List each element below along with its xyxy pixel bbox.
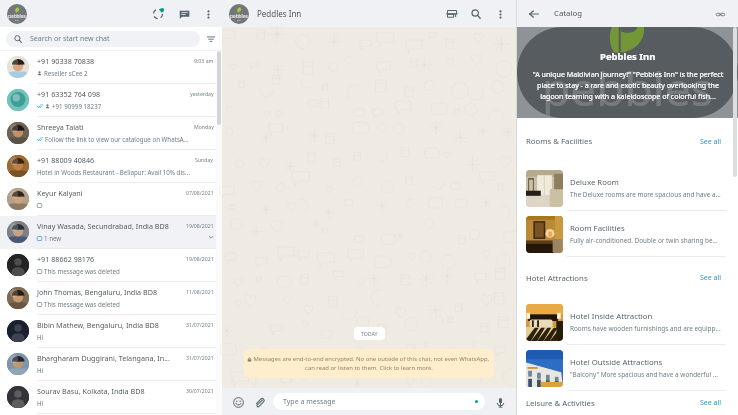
staticText: Hi — [37, 333, 44, 341]
button[interactable]: New chat — [175, 5, 193, 23]
button[interactable]: Status — [149, 5, 167, 23]
staticText: Search or start new chat — [30, 34, 110, 44]
button[interactable]: See all — [698, 270, 724, 286]
button[interactable]: See all — [698, 134, 724, 150]
staticText: Hotel Attractions — [526, 273, 588, 284]
button[interactable]: Hotel Inside Attraction — [517, 299, 738, 345]
staticText: "A unique Maldivian journey!" "Pebbles I… — [525, 69, 731, 101]
button[interactable]: Keyur Kalyani — [0, 183, 222, 216]
staticText: Deluxe Room — [570, 177, 619, 188]
staticText: See all — [700, 398, 722, 408]
button[interactable]: Voice message — [492, 394, 508, 410]
button[interactable]: +91 88009 40846 — [0, 150, 222, 183]
button[interactable]: John Thomas, Bengaluru, India BD8 — [0, 282, 222, 315]
staticText: +91 90338 70838 — [37, 56, 95, 66]
staticText: inn — [237, 18, 241, 21]
staticText: 31/07/2021 — [186, 321, 214, 328]
button[interactable]: +91 63352 764 098 — [0, 84, 222, 117]
button[interactable]: Search — [467, 5, 485, 23]
staticText: This message was deleted — [44, 267, 120, 275]
staticText: Catalog — [554, 8, 583, 19]
staticText: Monday — [194, 123, 214, 130]
staticText: Peddles Inn — [257, 8, 302, 19]
button[interactable]: Bhargharam Duggirani, Telangana, In... — [0, 348, 222, 381]
staticText: 30/07/2021 — [186, 387, 214, 394]
button[interactable]: Hotel Outside Attractions — [517, 345, 738, 391]
staticText: 11/08/2021 — [186, 288, 214, 295]
staticText: +91 90999 18237 — [52, 102, 102, 110]
staticText: Hotel in Woods Restaurant - Bellapur: Av… — [37, 168, 191, 176]
button[interactable]: Filter chats — [204, 32, 218, 46]
staticText: Sourav Basu, Kolkata, India BD8 — [37, 386, 145, 396]
button[interactable]: +91 90338 70838 — [0, 51, 222, 84]
staticText: Type a message — [283, 397, 336, 407]
button[interactable]: +91 88662 98176 — [0, 249, 222, 282]
staticText: This message was deleted — [44, 300, 120, 308]
staticText: Keyur Kalyani — [37, 188, 83, 198]
button[interactable]: pebbles — [229, 0, 508, 27]
staticText: See all — [700, 137, 722, 147]
staticText: Rooms & Facilities — [526, 136, 593, 147]
staticText: 31/07/2021 — [186, 354, 214, 361]
staticText: 9:03 am — [194, 57, 214, 64]
button[interactable]: Sourav Basu, Kolkata, India BD8 — [0, 381, 222, 414]
button[interactable]: Bibin Mathew, Bengaluru, India BD8 — [0, 315, 222, 348]
staticText: Leisure & Activities — [526, 398, 595, 409]
staticText: +91 88662 98176 — [37, 254, 95, 264]
button[interactable]: Catalog — [443, 5, 461, 23]
button[interactable]: Messages are end-to-end encrypted. No on… — [244, 349, 494, 378]
button[interactable]: Shreeya Talati — [0, 117, 222, 150]
staticText: Vinay Wasada, Secundrabad, India BD8 — [37, 221, 169, 231]
staticText: inn — [15, 18, 19, 21]
staticText: 19/08/2021 — [186, 255, 214, 262]
staticText: Reseller sCee 2 — [44, 69, 88, 77]
staticText: Rooms have wooden furnishings and are eq… — [570, 324, 721, 333]
staticText: pebbles — [542, 57, 713, 118]
staticText: 07/08/2021 — [186, 189, 214, 196]
staticText: "Balcony" More spacious and have a wonde… — [570, 370, 718, 379]
staticText: Fully air-conditioned. Double or twin sh… — [570, 236, 718, 245]
staticText: Hi — [37, 366, 44, 374]
staticText: pebbles — [8, 13, 26, 20]
button[interactable]: Vinay Wasada, Secundrabad, India BD8 — [0, 216, 222, 249]
button[interactable]: Deluxe Room — [517, 165, 738, 211]
staticText: Bibin Mathew, Bengaluru, India BD8 — [37, 320, 159, 330]
staticText: yesterday — [190, 90, 214, 97]
staticText: Hotel Inside Attraction — [570, 311, 653, 322]
staticText: Pebbles Inn — [600, 50, 656, 63]
staticText: 19/08/2021 — [186, 222, 214, 229]
staticText: TODAY — [361, 330, 378, 337]
staticText: pebbles — [230, 13, 248, 20]
button[interactable]: Type a message — [273, 393, 485, 410]
button[interactable]: Emoji — [230, 394, 246, 410]
staticText: +91 88009 40846 — [37, 155, 95, 165]
staticText: Follow the link to view our catalogue on… — [45, 135, 190, 143]
staticText: 1 new — [44, 234, 62, 242]
button[interactable]: Search or start new chat — [6, 31, 200, 47]
staticText: See all — [700, 273, 722, 283]
button[interactable]: Room Facilities — [517, 211, 738, 257]
staticText: Bhargharam Duggirani, Telangana, In... — [37, 353, 170, 363]
staticText: The Deluxe rooms are more spacious and h… — [570, 190, 721, 199]
button[interactable]: Menu — [200, 6, 216, 22]
button[interactable]: Back — [526, 6, 542, 22]
button[interactable]: Attach — [251, 394, 267, 410]
button[interactable]: See all — [698, 395, 724, 411]
button[interactable]: Menu — [492, 6, 508, 22]
staticText: Hotel Outside Attractions — [570, 357, 663, 368]
staticText: Shreeya Talati — [37, 122, 84, 132]
staticText: Sunday — [195, 156, 214, 163]
button[interactable]: Copy link — [712, 6, 728, 22]
staticText: John Thomas, Bengaluru, India BD8 — [37, 287, 158, 297]
staticText: Messages are end-to-end encrypted. No on… — [248, 355, 490, 372]
staticText: Room Facilities — [570, 223, 625, 234]
staticText: +91 63352 764 098 — [37, 89, 101, 99]
staticText: Hi — [37, 399, 44, 407]
